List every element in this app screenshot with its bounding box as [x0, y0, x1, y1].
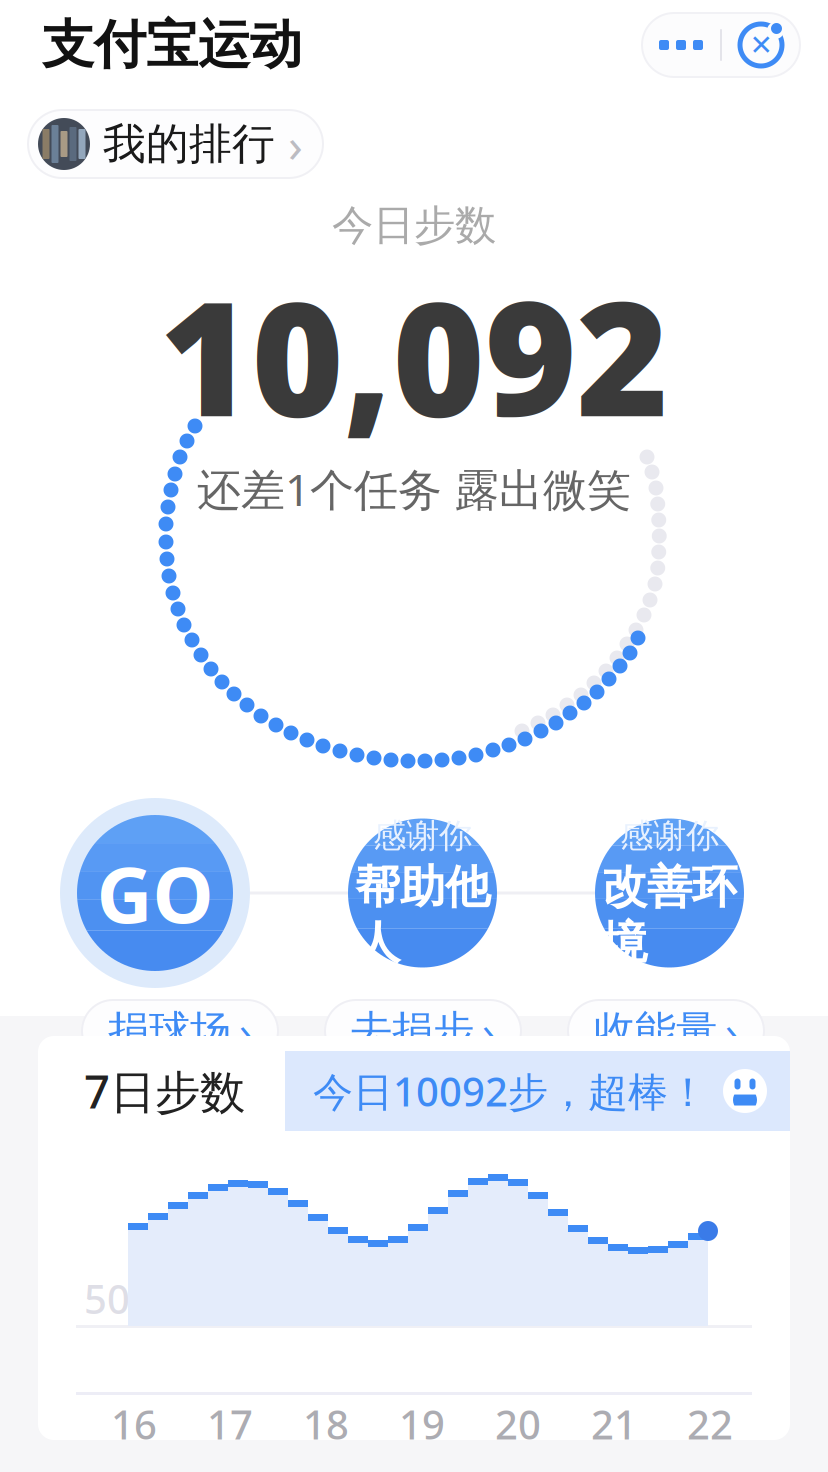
staticText: 16 [111, 1397, 157, 1450]
staticText: 今日步数 [332, 200, 496, 251]
staticText: 19 [399, 1397, 445, 1450]
staticText: 18 [303, 1397, 349, 1450]
button[interactable]: 关闭 [722, 13, 800, 77]
staticText: 20 [495, 1397, 541, 1450]
staticText: 去捐步 [351, 1006, 474, 1056]
button[interactable]: 今日10092步，超棒！ [285, 1051, 790, 1131]
staticText: › [725, 1004, 738, 1058]
staticText: 我的排行 [103, 118, 275, 170]
staticText: 改善环境 [602, 859, 737, 971]
staticText: 帮助他人 [355, 859, 490, 971]
staticText: 捐球场 [108, 1006, 231, 1056]
button[interactable]: 感谢你 [348, 818, 497, 967]
button[interactable]: 去捐步 [325, 1000, 521, 1062]
staticText: 感谢你 [373, 815, 472, 856]
staticText: 22 [687, 1397, 733, 1450]
button[interactable]: 收能量 [568, 1000, 764, 1062]
staticText: › [482, 1004, 495, 1058]
button[interactable]: GO 开始运动 [60, 798, 250, 988]
staticText: 17 [207, 1397, 253, 1450]
staticText: 今日10092步，超棒！ [313, 1064, 708, 1117]
staticText: ✕ [749, 29, 772, 61]
staticText: 感谢你 [620, 815, 719, 856]
staticText: GO [96, 842, 213, 944]
staticText: › [239, 1004, 252, 1058]
button[interactable]: 感谢你 [595, 818, 744, 967]
staticText: › [288, 112, 303, 176]
staticText: 7日步数 [84, 1061, 245, 1121]
staticText: 还差1个任务 露出微笑 [197, 460, 631, 518]
staticText: 21 [591, 1397, 637, 1450]
staticText: 5000 [84, 1272, 176, 1325]
button[interactable]: 我的排行 [28, 110, 323, 178]
staticText: 收能量 [594, 1006, 717, 1056]
button[interactable]: 捐球场 [82, 1000, 278, 1062]
button[interactable]: 更多 [642, 13, 720, 77]
staticText: 10,092 [159, 251, 668, 460]
staticText: 支付宝运动 [42, 13, 302, 77]
